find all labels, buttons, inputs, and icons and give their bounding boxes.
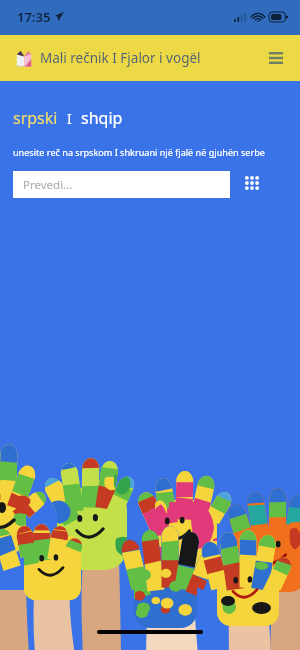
button[interactable]: Apps xyxy=(240,171,264,195)
button[interactable]: shqip xyxy=(81,107,123,129)
staticText: Mali rečnik I Fjalor i vogël xyxy=(40,49,201,67)
staticText: 17:35 xyxy=(17,8,51,26)
staticText: unesite reč na srpskom I shkruani një fj… xyxy=(13,146,265,158)
button[interactable]: Menu xyxy=(264,46,288,70)
staticText: I xyxy=(67,109,72,128)
staticText: srpski xyxy=(13,107,58,129)
staticText: Prevedi... xyxy=(23,177,73,193)
staticText: shqip xyxy=(81,107,123,129)
button[interactable]: srpski xyxy=(13,107,58,129)
button[interactable]: Prevedi... xyxy=(13,171,230,198)
